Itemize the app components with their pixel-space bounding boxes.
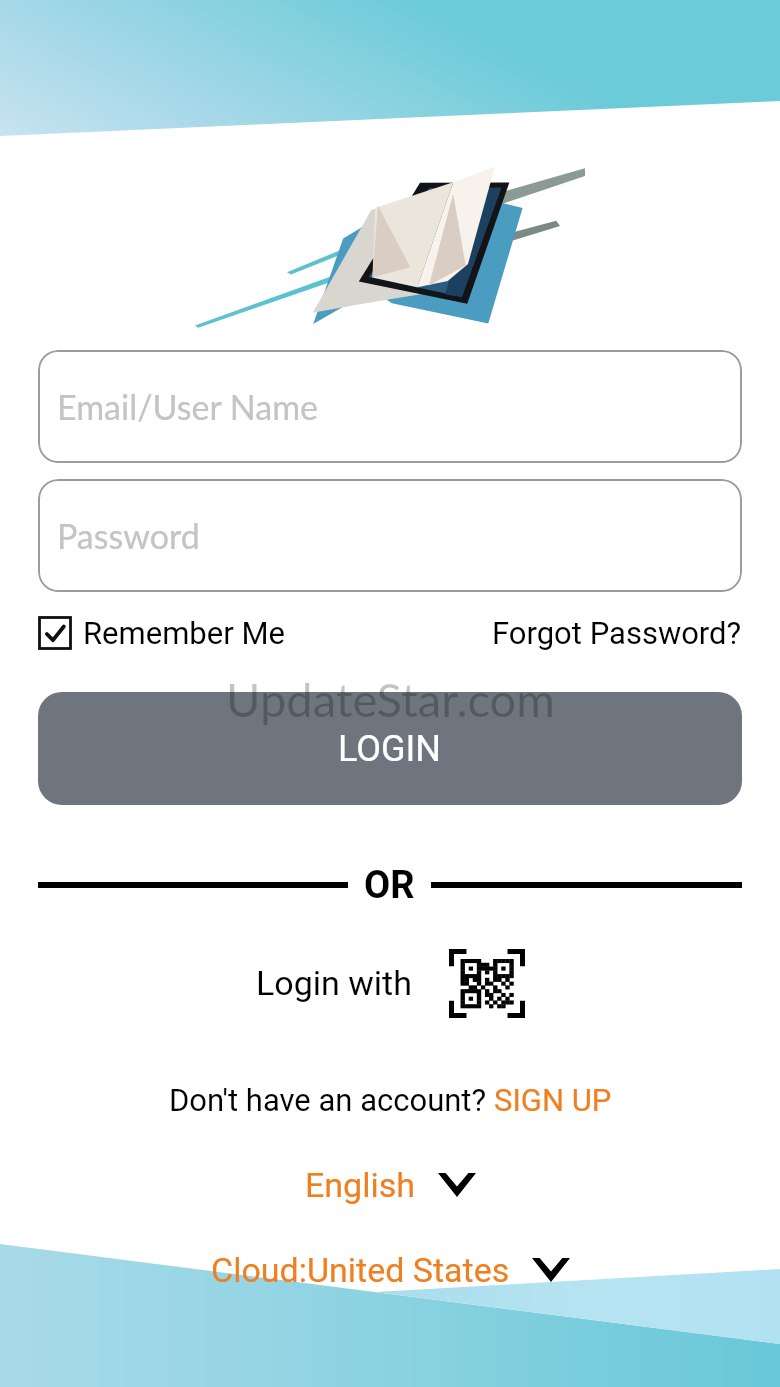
button[interactable]: LOGIN: [38, 692, 742, 805]
staticText: Remember Me: [83, 615, 285, 651]
staticText: English: [305, 1165, 416, 1205]
staticText: OR: [364, 863, 415, 908]
staticText: Login with: [256, 963, 412, 1003]
staticText: Don't have an account?: [169, 1082, 494, 1118]
button[interactable]: Email/User Name: [38, 350, 742, 463]
button[interactable]: Password: [38, 479, 742, 592]
button[interactable]: Login with QR code: [449, 949, 525, 1018]
button[interactable]: Cloud:United States: [211, 1250, 570, 1290]
button[interactable]: English: [305, 1165, 476, 1205]
staticText: UpdateStar.com: [226, 671, 555, 727]
staticText: Password: [57, 515, 200, 556]
staticText: Forgot Password?: [492, 615, 742, 651]
button[interactable]: Remember Me: [38, 615, 285, 651]
staticText: Cloud:United States: [211, 1250, 510, 1290]
staticText: LOGIN: [338, 728, 442, 770]
staticText: SIGN UP: [494, 1082, 612, 1118]
button[interactable]: SIGN UP: [494, 1082, 612, 1118]
button[interactable]: Forgot Password?: [492, 615, 742, 651]
staticText: Email/User Name: [57, 386, 319, 427]
